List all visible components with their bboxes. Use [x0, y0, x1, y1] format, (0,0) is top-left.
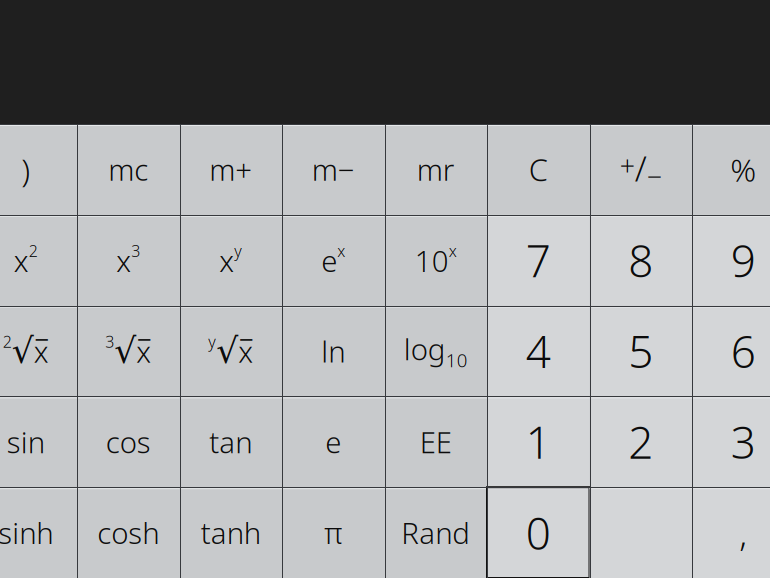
button[interactable]: mr	[384, 124, 487, 215]
staticText: 3	[731, 413, 756, 471]
button[interactable]: 2	[589, 396, 692, 487]
button[interactable]: log10	[384, 306, 487, 396]
staticText: 2	[628, 413, 653, 471]
button[interactable]: x2	[0, 215, 77, 306]
button[interactable]: Rand	[384, 487, 487, 578]
button[interactable]: 10x	[384, 215, 487, 306]
staticText: +/−	[620, 145, 662, 194]
staticText: m−	[312, 150, 355, 189]
button[interactable]: m+	[179, 124, 282, 215]
staticText: 5	[628, 322, 653, 380]
button[interactable]: C	[487, 124, 589, 215]
button[interactable]: e	[282, 396, 384, 487]
staticText: x3	[116, 240, 140, 280]
button[interactable]: )	[0, 124, 77, 215]
button[interactable]: 0	[487, 487, 589, 578]
staticText: EE	[420, 422, 452, 461]
staticText: 4	[526, 322, 551, 380]
button[interactable]: %	[692, 124, 770, 215]
button[interactable]: 2√x̅	[0, 306, 77, 396]
button[interactable]: cosh	[77, 487, 179, 578]
button[interactable]: ex	[282, 215, 384, 306]
staticText: e	[325, 422, 341, 461]
staticText: tan	[209, 422, 252, 461]
button[interactable]: tan	[179, 396, 282, 487]
staticText: mr	[417, 150, 455, 189]
button[interactable]: 4	[487, 306, 589, 396]
staticText: 8	[628, 231, 653, 289]
button[interactable]: mc	[77, 124, 179, 215]
staticText: tanh	[201, 513, 261, 552]
button[interactable]: tanh	[179, 487, 282, 578]
button[interactable]: ln	[282, 306, 384, 396]
staticText: 0	[526, 503, 551, 562]
staticText: %	[730, 148, 756, 191]
staticText: 1	[526, 413, 551, 471]
button[interactable]: xy	[179, 215, 282, 306]
button[interactable]: 8	[589, 215, 692, 306]
staticText: xy	[219, 240, 242, 280]
staticText: ,	[739, 510, 747, 556]
button[interactable]: m−	[282, 124, 384, 215]
staticText: 6	[731, 322, 756, 380]
staticText: mc	[108, 150, 148, 189]
staticText: y√x̅	[208, 331, 253, 371]
staticText: ln	[321, 331, 345, 370]
button[interactable]: +/−	[589, 124, 692, 215]
button[interactable]: π	[282, 487, 384, 578]
button[interactable]: cos	[77, 396, 179, 487]
button[interactable]: 6	[692, 306, 770, 396]
staticText: Rand	[401, 513, 470, 552]
button[interactable]: sinh	[0, 487, 77, 578]
button[interactable]: x3	[77, 215, 179, 306]
button[interactable]: EE	[384, 396, 487, 487]
staticText: m+	[209, 150, 252, 189]
staticText: cosh	[97, 513, 159, 552]
staticText: x2	[14, 240, 38, 280]
staticText: log10	[404, 329, 468, 372]
staticText: sin	[7, 422, 45, 461]
button[interactable]	[589, 487, 692, 578]
staticText: sinh	[0, 513, 53, 552]
button[interactable]: 3√x̅	[77, 306, 179, 396]
button[interactable]: sin	[0, 396, 77, 487]
staticText: π	[324, 513, 342, 552]
staticText: cos	[106, 422, 151, 461]
button[interactable]: ,	[692, 487, 770, 578]
button[interactable]: 5	[589, 306, 692, 396]
staticText: C	[529, 149, 548, 190]
button[interactable]: 1	[487, 396, 589, 487]
button[interactable]: 7	[487, 215, 589, 306]
button[interactable]: 3	[692, 396, 770, 487]
staticText: 3√x̅	[105, 331, 151, 371]
button[interactable]: y√x̅	[179, 306, 282, 396]
staticText: )	[21, 148, 30, 191]
button[interactable]: 9	[692, 215, 770, 306]
staticText: 7	[526, 231, 551, 289]
staticText: ex	[321, 240, 345, 280]
staticText: 10x	[415, 240, 457, 280]
staticText: 9	[731, 231, 756, 289]
staticText: 2√x̅	[3, 331, 49, 371]
